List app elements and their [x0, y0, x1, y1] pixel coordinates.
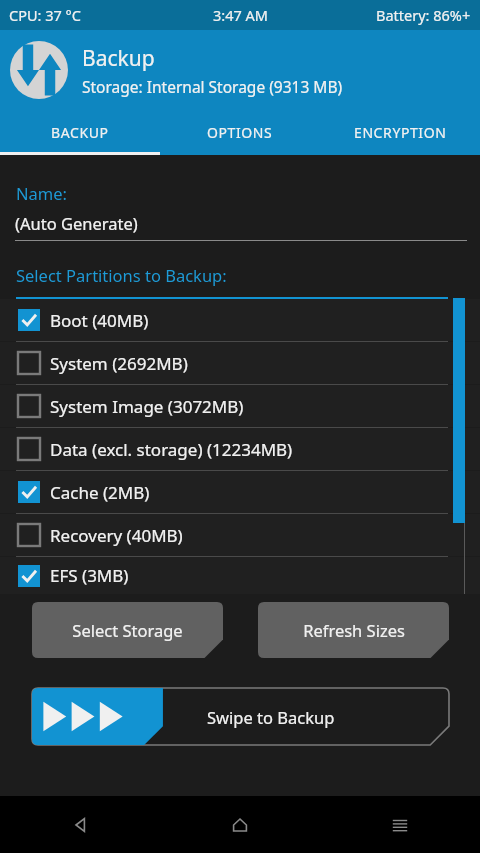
button[interactable]: Swipe to Backup: [32, 688, 449, 745]
staticText: Name:: [16, 182, 67, 204]
staticText: ENCRYPTION: [354, 123, 447, 142]
staticText: System Image (3072MB): [50, 395, 244, 418]
staticText: Battery: 86%+: [376, 5, 471, 25]
button[interactable]: Recovery (40MB): [0, 514, 480, 556]
button[interactable]: System (2692MB): [0, 342, 480, 384]
staticText: Refresh Sizes: [303, 619, 405, 641]
staticText: Select Partitions to Backup:: [16, 264, 227, 286]
button[interactable]: System Image (3072MB): [0, 385, 480, 427]
button[interactable]: ENCRYPTION: [320, 110, 480, 155]
button[interactable]: Home: [160, 796, 320, 853]
staticText: 3:47 AM: [213, 5, 268, 25]
button[interactable]: EFS (3MB): [0, 557, 480, 594]
staticText: (Auto Generate): [15, 212, 138, 234]
staticText: Select Storage: [72, 619, 183, 641]
button[interactable]: Refresh Sizes: [258, 602, 449, 658]
staticText: BACKUP: [51, 123, 109, 142]
staticText: System (2692MB): [50, 352, 188, 375]
staticText: Backup: [82, 44, 155, 73]
staticText: Recovery (40MB): [50, 524, 183, 547]
staticText: Cache (2MB): [50, 481, 150, 504]
button[interactable]: Select Storage: [32, 602, 223, 658]
staticText: Boot (40MB): [50, 309, 149, 332]
button[interactable]: Cache (2MB): [0, 471, 480, 513]
staticText: CPU: 37 °C: [9, 5, 81, 25]
button[interactable]: Boot (40MB): [0, 299, 480, 341]
staticText: Data (excl. storage) (12234MB): [50, 438, 293, 461]
button[interactable]: OPTIONS: [160, 110, 320, 155]
staticText: Swipe to Backup: [207, 706, 335, 728]
button[interactable]: Data (excl. storage) (12234MB): [0, 428, 480, 470]
button[interactable]: Back: [0, 796, 160, 853]
staticText: EFS (3MB): [50, 564, 129, 587]
button[interactable]: Recent apps: [320, 796, 480, 853]
button[interactable]: BACKUP: [0, 110, 160, 155]
staticText: Storage: Internal Storage (9313 MB): [82, 76, 343, 97]
staticText: OPTIONS: [207, 123, 273, 142]
